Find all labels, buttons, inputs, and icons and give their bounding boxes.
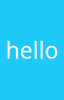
staticText: hello: [5, 35, 58, 65]
